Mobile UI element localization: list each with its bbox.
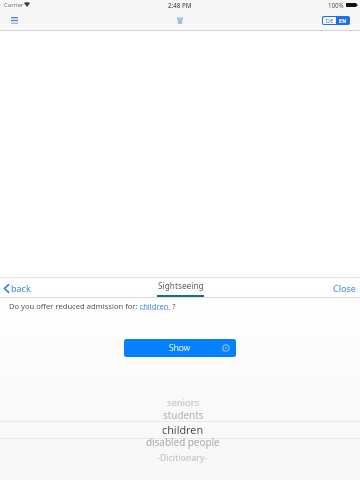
staticText: 100% (328, 1, 344, 9)
staticText: -Dicitionary- (157, 452, 208, 463)
button[interactable]: DE (323, 17, 349, 24)
staticText: students (163, 408, 204, 421)
button[interactable]: Delete (171, 11, 189, 29)
staticText: Sightseeing (158, 280, 204, 291)
button[interactable]: Do you offer reduced admission for: chil… (9, 301, 176, 311)
staticText: children (162, 422, 204, 437)
staticText: disabled people (146, 435, 220, 448)
staticText: seniors (167, 396, 200, 409)
button[interactable]: Show (124, 339, 236, 357)
button[interactable]: Menu (5, 11, 23, 29)
staticText: Close (333, 282, 356, 294)
staticText: DE (326, 17, 334, 24)
staticText: EN (339, 17, 347, 24)
button[interactable]: back (4, 282, 31, 294)
staticText: 2:48 PM (168, 1, 192, 9)
staticText: back (11, 282, 31, 294)
staticText: Carrier (4, 1, 24, 9)
button[interactable]: Close (331, 281, 358, 295)
button[interactable]: Sightseeing (156, 279, 206, 292)
staticText: Show (169, 342, 191, 354)
